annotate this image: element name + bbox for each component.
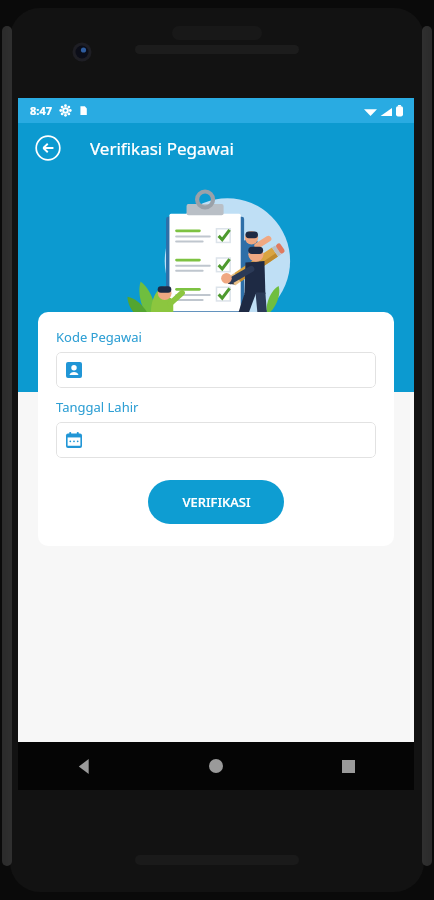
staticText: 8:47	[30, 103, 52, 118]
staticText: VERIFIKASI	[182, 493, 251, 511]
button[interactable]: Back	[32, 132, 64, 164]
button[interactable]: Home	[150, 742, 282, 790]
other: Employee code	[66, 362, 82, 378]
button[interactable]: Employee code	[56, 352, 376, 388]
button[interactable]: Back	[18, 742, 150, 790]
staticText: Verifikasi Pegawai	[90, 137, 234, 160]
button[interactable]: VERIFIKASI	[148, 480, 284, 524]
other: Date of birth	[66, 432, 82, 448]
staticText: Tanggal Lahir	[56, 398, 139, 416]
button[interactable]: Date of birth	[56, 422, 376, 458]
button[interactable]: Recents	[282, 742, 414, 790]
staticText: Kode Pegawai	[56, 328, 142, 346]
